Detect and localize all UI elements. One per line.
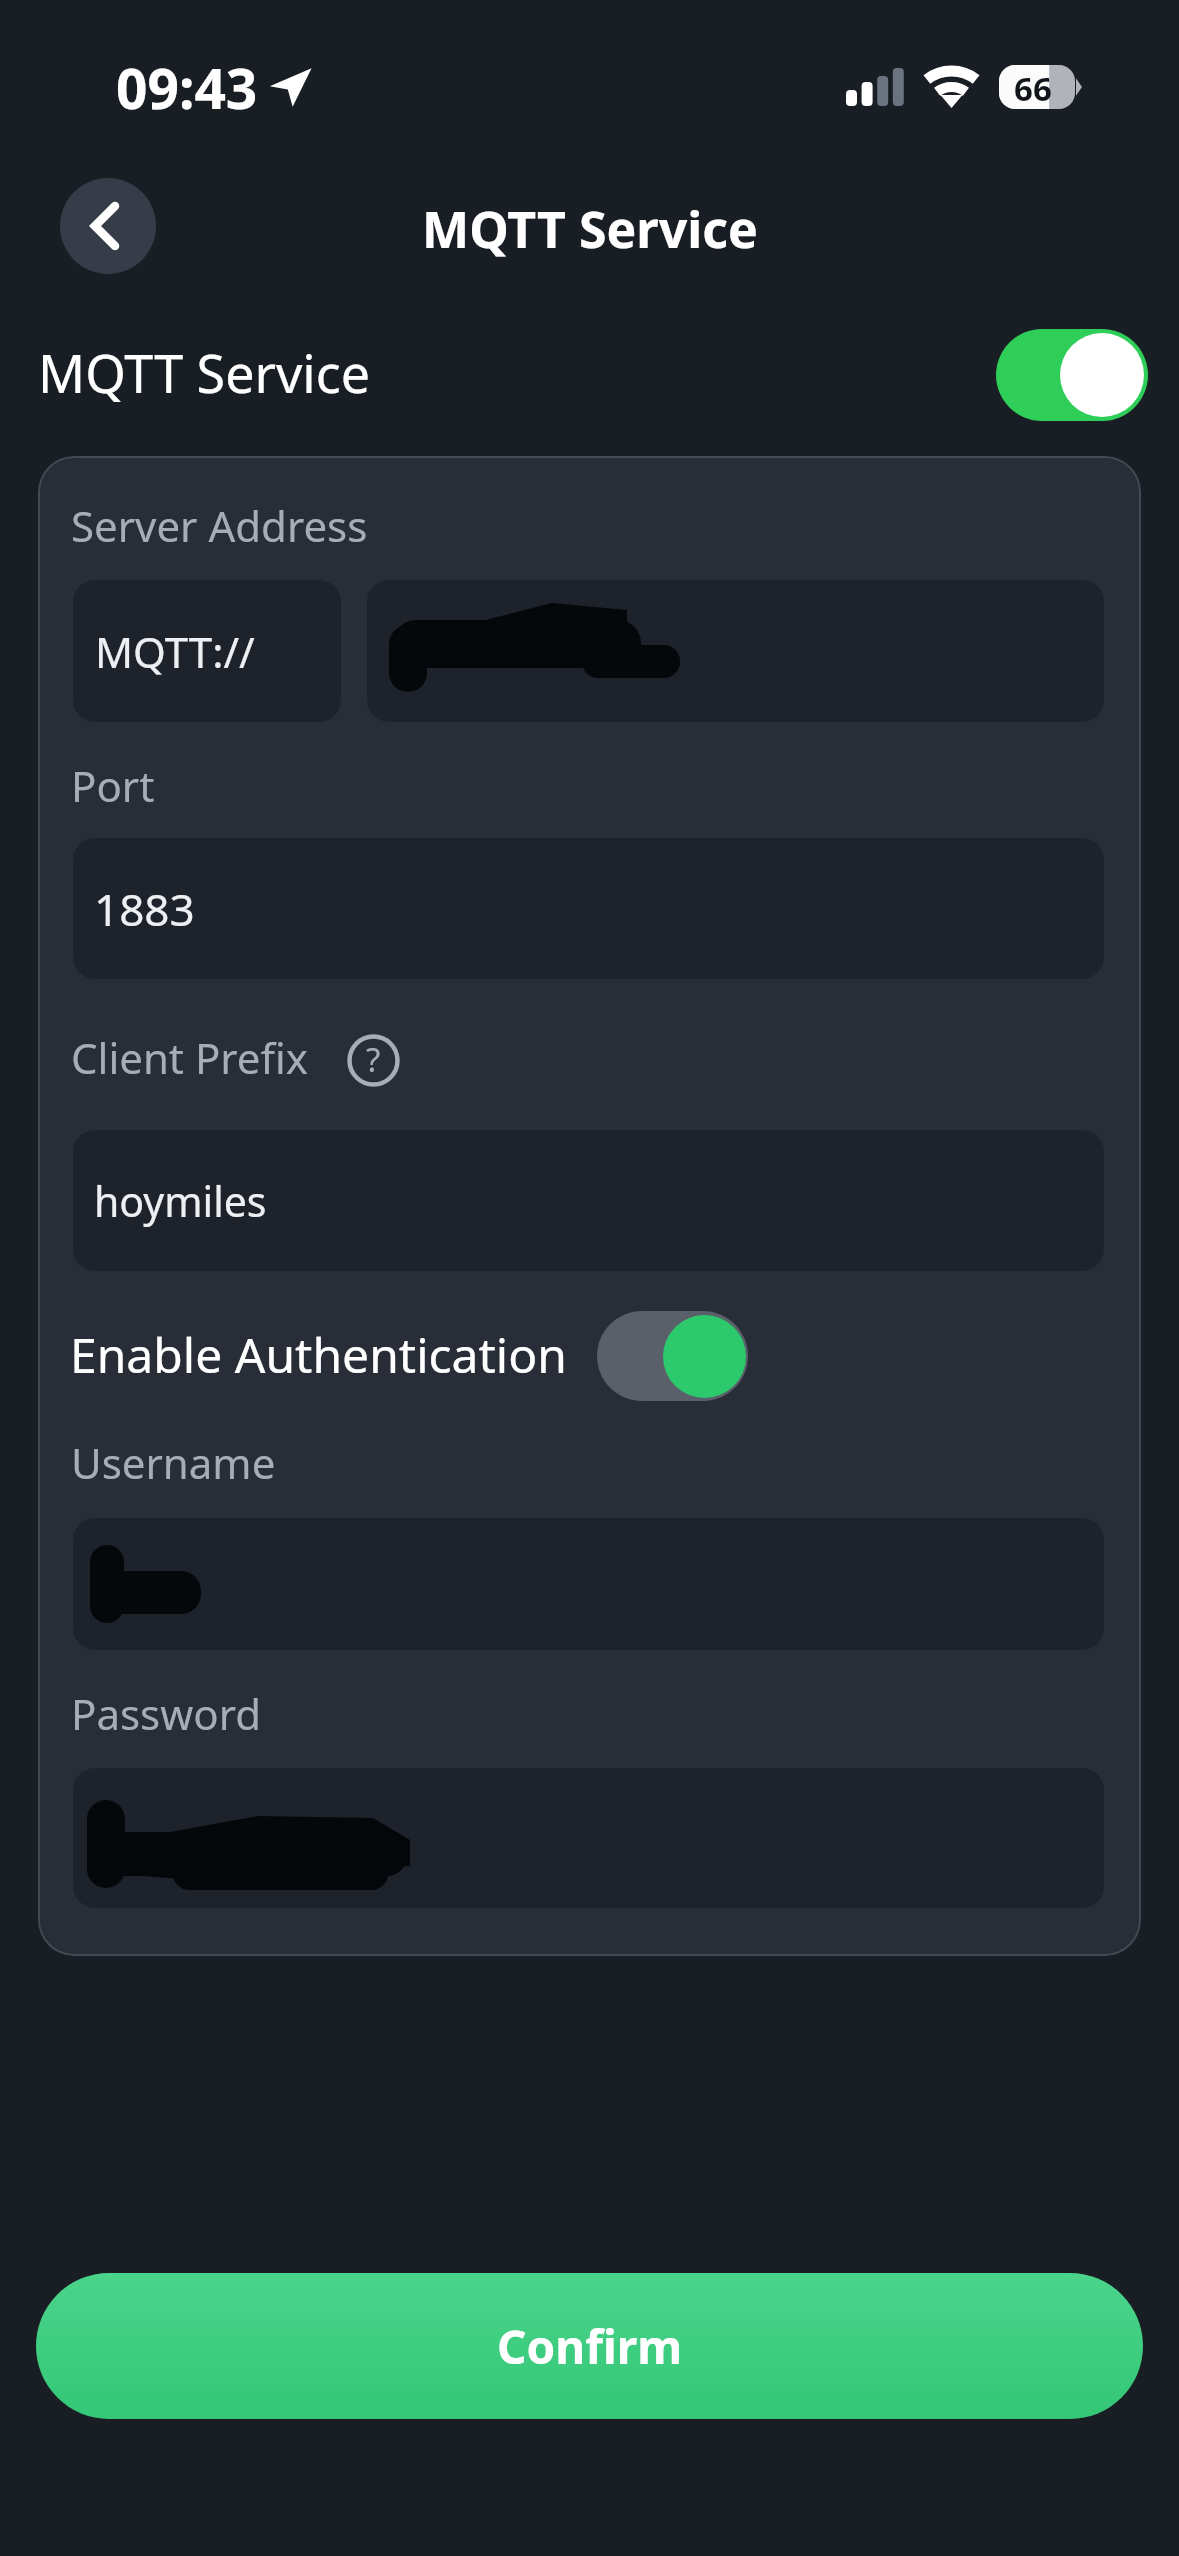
- staticText: Port: [71, 757, 155, 814]
- staticText: hoymiles: [94, 1173, 267, 1229]
- button[interactable]: MQTT Service toggle: [996, 329, 1148, 421]
- button[interactable]: Enable Authentication toggle: [597, 1311, 748, 1401]
- staticText: MQTT Service: [38, 337, 371, 408]
- staticText: Password: [71, 1685, 261, 1742]
- staticText: Server Address: [71, 497, 368, 554]
- staticText: ?: [366, 1037, 381, 1082]
- staticText: 66: [1014, 66, 1052, 110]
- button[interactable]: [367, 580, 1104, 722]
- staticText: 09:43: [116, 50, 258, 125]
- staticText: MQTT://: [95, 623, 255, 680]
- staticText: Client Prefix: [71, 1029, 309, 1086]
- staticText: Confirm: [497, 2315, 683, 2378]
- button[interactable]: hoymiles: [73, 1130, 1104, 1271]
- button[interactable]: Back: [60, 178, 156, 274]
- button[interactable]: MQTT://: [73, 580, 341, 722]
- button[interactable]: 1883: [73, 838, 1104, 979]
- button[interactable]: [73, 1518, 1104, 1650]
- button[interactable]: Help: [347, 1034, 400, 1087]
- button[interactable]: Confirm: [36, 2273, 1143, 2419]
- staticText: Enable Authentication: [70, 1322, 567, 1387]
- staticText: 1883: [94, 879, 195, 939]
- staticText: MQTT Service: [422, 195, 758, 263]
- button[interactable]: [73, 1768, 1104, 1908]
- staticText: Username: [71, 1434, 276, 1491]
